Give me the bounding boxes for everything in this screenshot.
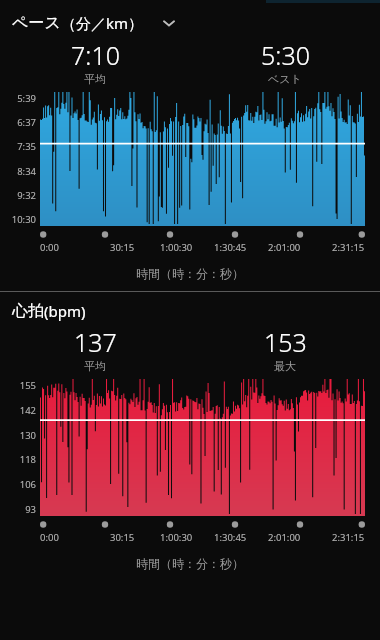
button[interactable]: ペース <box>0 3 380 36</box>
staticText: 1:00:30 <box>160 531 193 544</box>
staticText: 1:00:30 <box>160 241 193 254</box>
staticText: 7:10 <box>71 38 120 72</box>
staticText: 142 <box>19 404 36 417</box>
staticText: 時間（時：分：秒） <box>136 556 244 571</box>
staticText: ペース <box>12 13 61 33</box>
staticText: 最大 <box>274 359 296 373</box>
staticText: 10:30 <box>11 213 36 226</box>
staticText: （分／km） <box>61 13 144 33</box>
staticText: 130 <box>19 429 36 442</box>
staticText: 平均 <box>84 359 106 373</box>
button[interactable]: 137 <box>0 325 190 373</box>
button[interactable]: 153 <box>190 325 380 373</box>
staticText: (bpm) <box>44 301 86 321</box>
staticText: 106 <box>19 478 36 491</box>
staticText: ベスト <box>268 72 302 86</box>
button[interactable]: 心拍 <box>0 292 380 323</box>
staticText: 2:01:00 <box>268 241 301 254</box>
staticText: 平均 <box>84 72 106 86</box>
staticText: 9:32 <box>17 189 36 202</box>
staticText: 1:30:45 <box>214 531 247 544</box>
staticText: 0:00 <box>40 531 59 544</box>
staticText: 0:00 <box>40 241 59 254</box>
staticText: 30:15 <box>110 241 135 254</box>
button[interactable]: 7:10 <box>0 38 190 86</box>
staticText: 2:31:15 <box>332 241 365 254</box>
staticText: 137 <box>74 325 117 359</box>
staticText: 1:30:45 <box>214 241 247 254</box>
staticText: 8:34 <box>17 165 36 178</box>
button[interactable]: 5:30 <box>190 38 380 86</box>
staticText: 心拍 <box>12 301 44 321</box>
staticText: 155 <box>19 379 36 392</box>
staticText: 30:15 <box>110 531 135 544</box>
staticText: 2:31:15 <box>332 531 365 544</box>
staticText: 2:01:00 <box>268 531 301 544</box>
staticText: 118 <box>19 453 36 466</box>
button[interactable]: Change metric <box>158 12 180 34</box>
staticText: 93 <box>25 503 36 516</box>
staticText: 5:39 <box>17 92 36 105</box>
staticText: 6:37 <box>17 116 36 129</box>
staticText: 5:30 <box>261 38 310 72</box>
staticText: 153 <box>264 325 307 359</box>
staticText: 7:35 <box>17 140 36 153</box>
staticText: 時間（時：分：秒） <box>136 266 244 281</box>
